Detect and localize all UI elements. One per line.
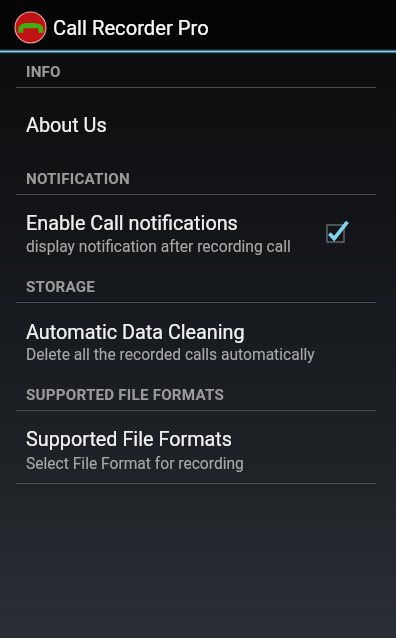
staticText: Supported File Formats xyxy=(26,428,232,451)
button[interactable]: About Us xyxy=(0,88,396,137)
staticText: About Us xyxy=(26,114,107,137)
staticText: display notification after recording cal… xyxy=(26,238,291,256)
staticText: STORAGE xyxy=(26,278,96,296)
staticText: INFO xyxy=(26,63,61,81)
staticText: Call Recorder Pro xyxy=(53,16,209,40)
staticText: Automatic Data Cleaning xyxy=(26,321,245,344)
staticText: Select File Format for recording xyxy=(26,455,244,473)
button[interactable]: Supported File Formats xyxy=(0,411,396,469)
button[interactable]: Automatic Data Cleaning xyxy=(0,303,396,362)
staticText: Enable Call notifications xyxy=(26,212,238,235)
button[interactable]: Enable Call notifications xyxy=(0,195,396,254)
staticText: SUPPORTED FILE FORMATS xyxy=(26,386,224,404)
button[interactable]: Enable Call notifications xyxy=(325,219,367,261)
staticText: NOTIFICATION xyxy=(26,170,130,188)
staticText: Delete all the recorded calls automatica… xyxy=(26,346,315,364)
